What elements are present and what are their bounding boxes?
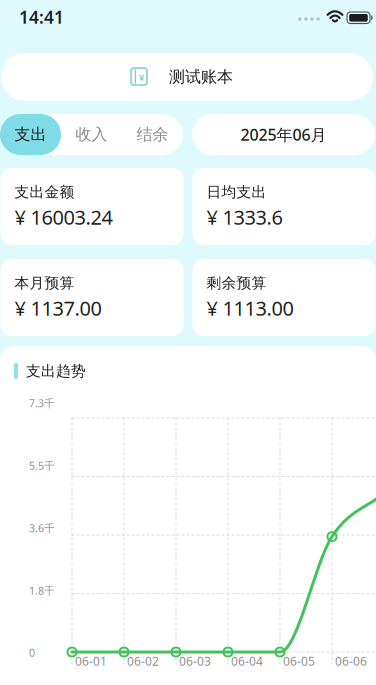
staticText: 3.6千 bbox=[29, 521, 55, 535]
staticText: 支出金额 bbox=[14, 183, 74, 201]
button[interactable]: 剩余预算 bbox=[192, 259, 375, 336]
staticText: 1.8千 bbox=[29, 583, 55, 598]
staticText: 06-05 bbox=[283, 653, 315, 669]
button[interactable]: 结余 bbox=[122, 114, 183, 155]
button[interactable]: 收入 bbox=[61, 114, 122, 155]
staticText: ¥ 16003.24 bbox=[14, 204, 112, 230]
staticText: 2025年06月 bbox=[240, 124, 326, 145]
staticText: 支出 bbox=[14, 125, 46, 144]
staticText: 5.5千 bbox=[29, 458, 55, 473]
button[interactable]: 日均支出 bbox=[192, 168, 375, 245]
staticText: 日均支出 bbox=[206, 183, 266, 201]
staticText: ¥ bbox=[139, 71, 144, 83]
staticText: 本月预算 bbox=[14, 274, 74, 292]
staticText: 剩余预算 bbox=[206, 274, 266, 292]
staticText: 结余 bbox=[136, 125, 168, 144]
button[interactable]: 本月预算 bbox=[0, 259, 183, 336]
staticText: 06-02 bbox=[127, 653, 159, 669]
staticText: 06-06 bbox=[335, 653, 367, 669]
staticText: 0 bbox=[29, 645, 35, 660]
staticText: 14:41 bbox=[19, 5, 64, 28]
button[interactable]: 2025年06月 bbox=[192, 114, 375, 155]
button[interactable]: 支出 bbox=[0, 114, 61, 155]
staticText: 支出趋势 bbox=[26, 362, 86, 380]
staticText: ¥ 1333.6 bbox=[206, 204, 282, 230]
staticText: 06-01 bbox=[75, 653, 107, 669]
button[interactable]: ¥ bbox=[1, 53, 373, 101]
staticText: 收入 bbox=[75, 125, 107, 144]
staticText: ¥ 1113.00 bbox=[206, 295, 293, 321]
staticText: 06-04 bbox=[231, 653, 263, 669]
button[interactable]: 支出金额 bbox=[0, 168, 183, 245]
staticText: 测试账本 bbox=[169, 67, 233, 87]
staticText: 06-03 bbox=[179, 653, 211, 669]
staticText: 7.3千 bbox=[29, 396, 55, 410]
staticText: ¥ 1137.00 bbox=[14, 295, 101, 321]
